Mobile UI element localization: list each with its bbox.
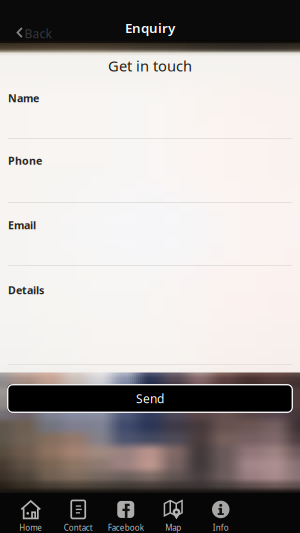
staticText: Contact — [64, 522, 93, 533]
staticText: Info — [213, 522, 229, 533]
staticText: Details — [8, 283, 44, 297]
button[interactable]: Facebook — [102, 497, 149, 533]
staticText: Get in touch — [108, 56, 192, 75]
staticText: Map — [165, 522, 181, 533]
staticText: Send — [136, 390, 164, 406]
button[interactable]: Send — [7, 384, 293, 413]
button[interactable]: Contact — [54, 497, 102, 533]
button[interactable]: Info — [197, 497, 244, 533]
staticText: Home — [19, 522, 42, 533]
staticText: Facebook — [108, 522, 144, 533]
button[interactable]: Map — [149, 497, 197, 533]
button[interactable]: Home — [7, 497, 54, 533]
staticText: Name — [8, 91, 39, 105]
staticText: Back — [24, 25, 51, 41]
staticText: Phone — [8, 153, 42, 168]
button[interactable]: Back — [6, 16, 50, 42]
staticText: Email — [8, 218, 36, 232]
staticText: Enquiry — [125, 19, 175, 37]
